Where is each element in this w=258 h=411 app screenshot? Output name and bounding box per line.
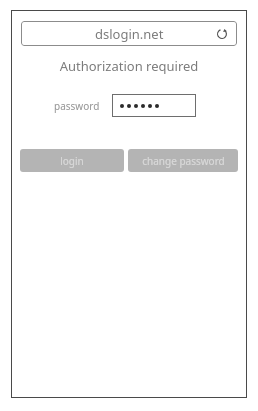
staticText: password <box>54 99 100 113</box>
button[interactable]: Reload <box>215 27 229 41</box>
staticText: change password <box>142 154 225 168</box>
button[interactable] <box>112 94 196 117</box>
button[interactable]: dslogin.net <box>21 21 237 46</box>
button[interactable]: login <box>20 149 124 172</box>
staticText: login <box>60 154 84 168</box>
button[interactable]: change password <box>128 149 238 172</box>
staticText: Authorization required <box>11 57 247 75</box>
staticText: dslogin.net <box>95 25 164 43</box>
